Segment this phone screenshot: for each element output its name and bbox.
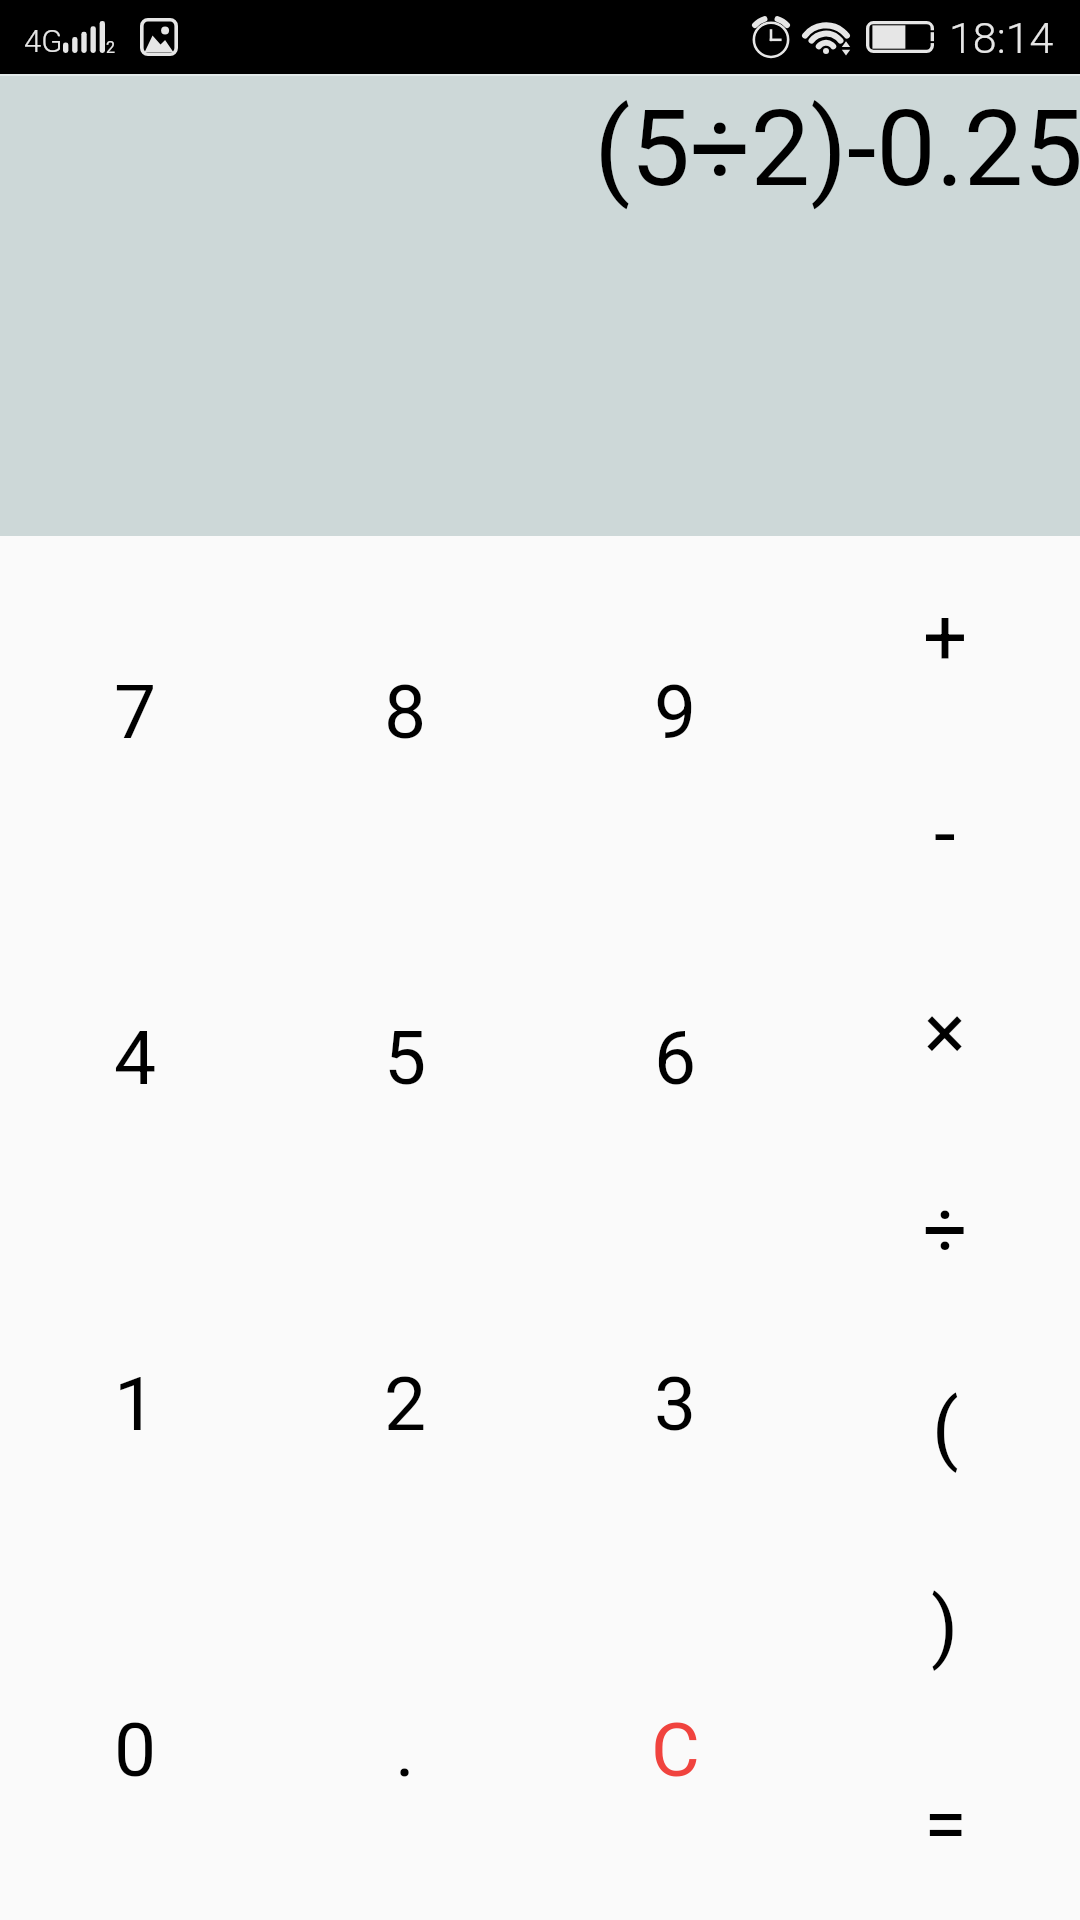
staticText: + [923, 592, 968, 683]
button[interactable]: 2 [270, 1228, 540, 1574]
staticText: 3 [654, 1360, 697, 1448]
staticText: 0 [114, 1706, 157, 1794]
button[interactable]: - [810, 733, 1080, 930]
staticText: 18:14 [949, 13, 1054, 63]
staticText: 5 [384, 1014, 427, 1102]
staticText: ( [932, 1383, 959, 1474]
button[interactable]: 8 [270, 536, 540, 882]
button[interactable]: ) [810, 1524, 1080, 1722]
staticText: C [651, 1706, 700, 1794]
button[interactable]: 3 [540, 1228, 810, 1574]
button[interactable]: ÷ [810, 1128, 1080, 1326]
button[interactable]: 9 [540, 536, 810, 882]
button[interactable]: 5 [270, 882, 540, 1228]
staticText: 7 [114, 668, 157, 756]
staticText: 9 [654, 668, 697, 756]
staticText: 4 [114, 1014, 157, 1102]
button[interactable]: 0 [0, 1574, 270, 1920]
button[interactable]: C [540, 1574, 810, 1920]
staticText: 1 [114, 1360, 157, 1448]
staticText: . [395, 1706, 415, 1794]
button[interactable]: ( [810, 1326, 1080, 1524]
staticText: 4G [24, 23, 63, 59]
button[interactable]: 7 [0, 536, 270, 882]
other: Battery [866, 21, 934, 53]
other: Alarm [752, 15, 790, 59]
staticText: = [924, 1779, 967, 1870]
other: Wi-Fi [803, 18, 849, 56]
staticText: × [924, 987, 966, 1078]
staticText: (5÷2)-0.25 [594, 87, 1080, 211]
button[interactable]: + [810, 536, 1080, 733]
staticText: ÷ [923, 1185, 968, 1276]
staticText: ) [931, 1581, 959, 1672]
staticText: 2 [384, 1360, 427, 1448]
staticText: 8 [384, 668, 427, 756]
staticText: - [934, 789, 956, 880]
staticText: 6 [654, 1014, 697, 1102]
button[interactable]: . [270, 1574, 540, 1920]
button[interactable]: = [810, 1722, 1080, 1920]
button[interactable]: 1 [0, 1228, 270, 1574]
button[interactable]: 4 [0, 882, 270, 1228]
other: Screenshot [140, 18, 178, 56]
button[interactable]: × [810, 930, 1080, 1128]
button[interactable]: 6 [540, 882, 810, 1228]
staticText: 2 [106, 38, 115, 57]
